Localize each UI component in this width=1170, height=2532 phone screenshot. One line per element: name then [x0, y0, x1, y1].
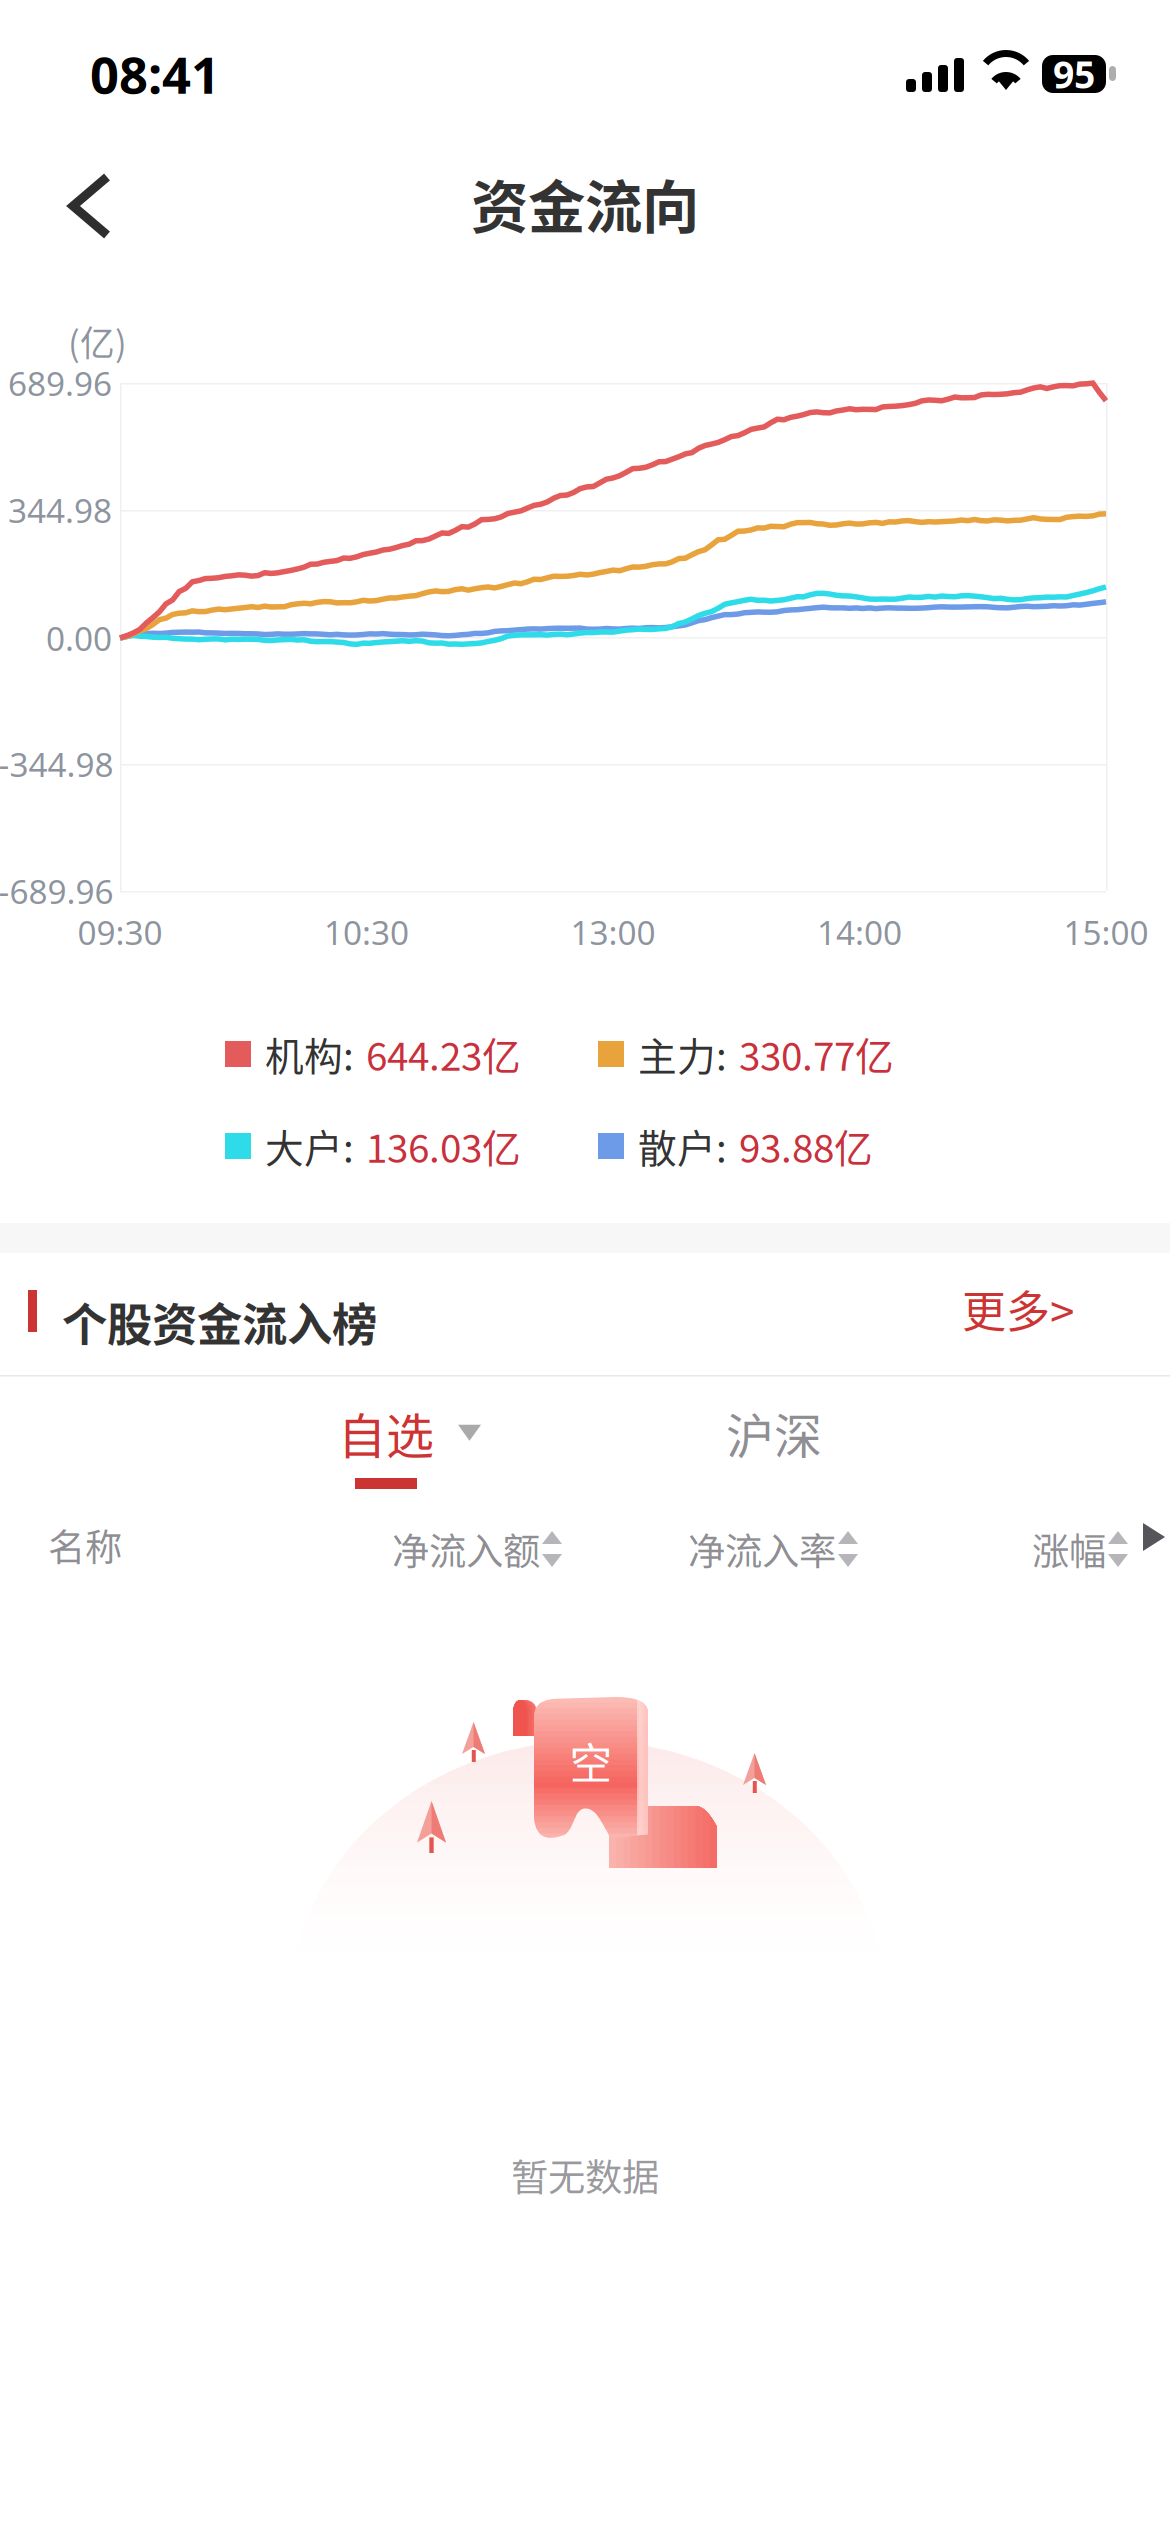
staticText: 沪深 [726, 1398, 822, 1467]
staticText: 644.23亿 [366, 1026, 521, 1082]
staticText: 净流入率 [688, 1522, 836, 1576]
staticText: -689.96 [0, 869, 113, 913]
staticText: 自选 [338, 1398, 434, 1467]
staticText: (亿) [68, 316, 127, 366]
staticText: 个股资金流入榜 [62, 1289, 377, 1355]
staticText: 暂无数据 [511, 2148, 659, 2202]
button[interactable]: Back [45, 149, 135, 263]
button[interactable]: 自选 [318, 1384, 501, 1481]
staticText: 136.03亿 [366, 1118, 521, 1174]
staticText: 空 [569, 1730, 612, 1792]
staticText: 344.98 [8, 488, 112, 532]
staticText: 更多> [962, 1277, 1074, 1341]
button[interactable]: 涨幅 [1032, 1512, 1128, 1586]
staticText: 资金流向 [471, 161, 699, 244]
staticText: 08:41 [90, 40, 220, 108]
staticText: 主力: [638, 1026, 727, 1082]
staticText: 09:30 [77, 910, 162, 954]
staticText: 689.96 [8, 361, 112, 405]
staticText: 净流入额 [392, 1522, 540, 1576]
staticText: 15:00 [1063, 910, 1148, 954]
staticText: 机构: [265, 1026, 354, 1082]
button[interactable]: 净流入额 [392, 1512, 562, 1586]
staticText: 14:00 [817, 910, 902, 954]
staticText: 330.77亿 [739, 1026, 894, 1082]
staticText: 涨幅 [1032, 1522, 1106, 1576]
staticText: 大户: [265, 1118, 354, 1174]
staticText: 95 [1053, 49, 1095, 99]
button[interactable]: 沪深 [700, 1384, 848, 1481]
button[interactable]: 净流入率 [688, 1512, 858, 1586]
staticText: -344.98 [0, 742, 113, 786]
staticText: 93.88亿 [739, 1118, 873, 1174]
staticText: 散户: [638, 1118, 727, 1174]
staticText: 10:30 [324, 910, 409, 954]
staticText: 0.00 [46, 616, 112, 660]
button[interactable]: 更多> [940, 1259, 1096, 1359]
staticText: 名称 [48, 1518, 122, 1572]
staticText: 13:00 [570, 910, 655, 954]
